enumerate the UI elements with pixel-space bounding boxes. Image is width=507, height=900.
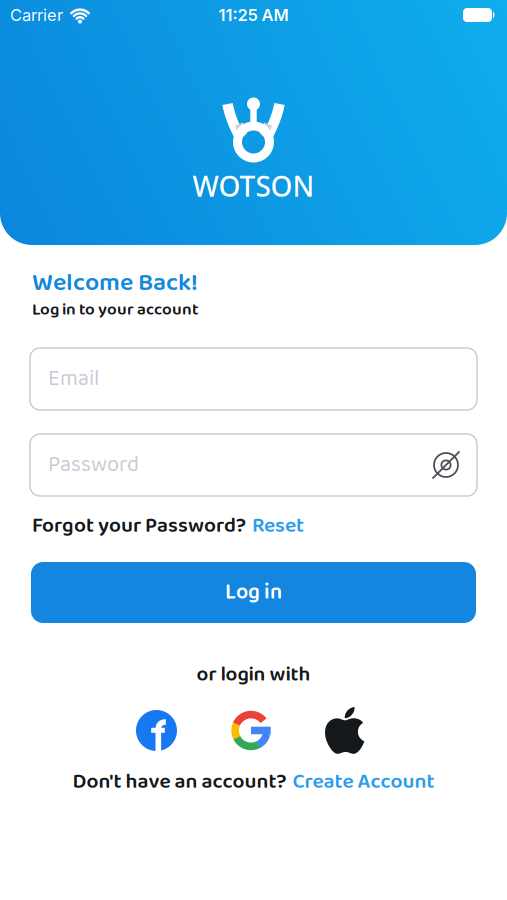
button[interactable]: Email [30, 348, 477, 410]
staticText: Create Account [292, 765, 434, 799]
button[interactable]: Password [30, 434, 477, 496]
button[interactable]: Log in with Apple [325, 707, 365, 754]
staticText: WOTSON [192, 167, 314, 205]
staticText: Don't have an account? [72, 765, 286, 799]
staticText: Forgot your Password? [32, 509, 246, 543]
button[interactable]: Create Account [292, 765, 434, 799]
staticText: Reset [252, 509, 304, 543]
staticText: Carrier [10, 5, 63, 25]
button[interactable]: Show password [431, 450, 461, 480]
button[interactable]: Log in [31, 562, 476, 623]
staticText: Log in to your account [32, 296, 199, 323]
button[interactable]: Reset [252, 509, 304, 543]
button[interactable]: Log in with Facebook [136, 710, 177, 751]
staticText: Password [48, 447, 139, 482]
staticText: or login with [196, 658, 310, 691]
staticText: 11:25 AM [218, 5, 288, 25]
staticText: Welcome Back! [32, 263, 198, 303]
button[interactable]: Log in with Google [229, 708, 273, 752]
staticText: Email [48, 361, 99, 396]
staticText: Log in [225, 575, 282, 610]
